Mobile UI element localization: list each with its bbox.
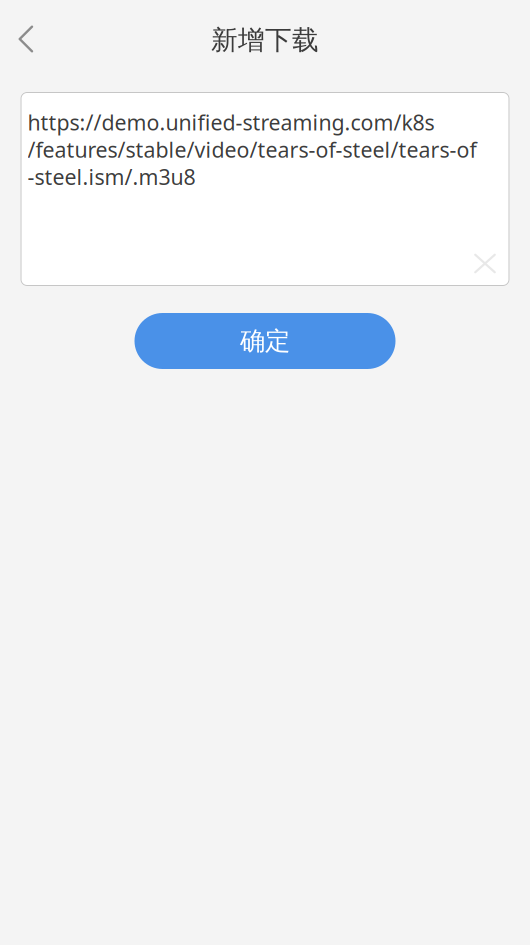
button[interactable]: Clear text [463,241,507,285]
button[interactable]: Download URL [20,92,509,286]
button[interactable]: 确定 [134,313,395,369]
staticText: https://demo.unified-streaming.com/k8s /… [27,108,476,191]
button[interactable]: Back [3,16,49,62]
staticText: 新增下载 [211,24,319,56]
staticText: 确定 [240,325,290,356]
